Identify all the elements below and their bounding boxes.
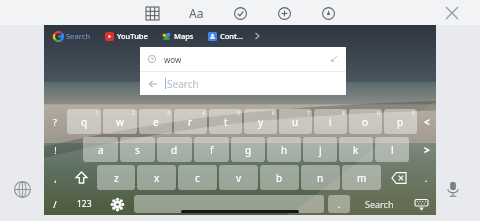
staticText: ! [54,144,57,156]
button[interactable]: f [194,137,229,162]
staticText: g [245,143,252,157]
staticText: q [81,115,88,129]
button[interactable]: Search [54,31,91,41]
button[interactable]: Shift [66,165,96,190]
staticText: r [188,115,193,129]
button[interactable]: c [178,165,217,190]
staticText: 0 [412,110,415,117]
staticText: , [54,172,57,184]
button[interactable]: r [174,109,207,134]
button[interactable]: a [83,137,118,162]
button[interactable]: Settings [102,193,132,215]
staticText: l [391,143,394,157]
staticText: i [329,115,332,129]
button[interactable]: Next [418,137,436,162]
staticText: j [319,143,322,157]
staticText: z [114,171,119,185]
staticText: o [362,115,369,129]
button[interactable]: t [209,109,242,134]
staticText: 3 [167,110,170,117]
button[interactable]: Table [140,1,164,25]
button[interactable]: , [44,165,66,190]
button[interactable]: Done [228,1,252,25]
button[interactable]: h [267,137,301,162]
button[interactable]: w [103,109,137,134]
button[interactable]: wow [140,47,346,71]
button[interactable]: Search [352,193,406,215]
button[interactable]: Draw [316,1,340,25]
button[interactable]: x [137,165,176,190]
button[interactable]: y [244,109,277,134]
staticText: b [276,171,283,185]
button[interactable]: p [384,109,417,134]
staticText: v [236,171,242,185]
staticText: x [154,171,160,185]
button[interactable]: m [342,165,381,190]
button[interactable]: ? [44,109,66,134]
button[interactable]: e [139,109,172,134]
staticText: p [397,115,404,129]
staticText: 4 [202,110,205,117]
button[interactable]: 123 [66,193,102,215]
button[interactable]: i [314,109,347,134]
button[interactable]: u [279,109,312,134]
other: Back [148,79,158,89]
staticText: t [224,115,228,129]
staticText: c [195,171,200,185]
staticText: 8 [342,110,345,117]
staticText: y [258,115,264,129]
staticText: e [153,115,159,129]
staticText: > [424,143,430,157]
button[interactable]: v [219,165,258,190]
staticText: . [338,198,341,210]
staticText: ? [53,116,57,128]
button[interactable]: o [349,109,382,134]
staticText: k [353,143,359,157]
button[interactable]: l [375,137,409,162]
button[interactable]: . [328,195,350,213]
staticText: s [135,143,140,157]
staticText: h [281,143,288,157]
button[interactable]: Space [134,195,324,213]
staticText: 9 [377,110,380,117]
button[interactable]: Back [140,72,346,95]
staticText: < [424,115,430,129]
staticText: wow [164,54,182,65]
button[interactable]: Maps [162,31,194,41]
staticText: a [98,143,104,157]
button[interactable]: Backspace [382,165,416,190]
button[interactable]: q [67,109,101,134]
button[interactable]: Previous [418,109,436,134]
button[interactable]: Aa [184,1,208,25]
staticText: 5 [237,110,240,117]
staticText: 1 [96,110,99,117]
staticText: Search [167,77,199,91]
staticText: u [292,115,299,129]
staticText: / [53,198,57,210]
button[interactable]: b [260,165,299,190]
button[interactable]: ! [44,137,66,162]
staticText: 123 [77,198,92,210]
staticText: 7 [307,110,310,117]
button[interactable]: Add [272,1,296,25]
button[interactable]: Cont... [208,31,244,41]
button[interactable]: k [339,137,373,162]
button[interactable]: g [231,137,265,162]
button[interactable]: j [303,137,337,162]
staticText: Aa [189,5,204,21]
button[interactable]: s [120,137,155,162]
button[interactable]: z [97,165,135,190]
button[interactable]: / [44,193,66,215]
button[interactable]: Hide keyboard [406,193,436,215]
button[interactable]: Voice input [439,175,467,203]
button[interactable]: YouTube [105,31,148,41]
button[interactable]: Language [8,175,36,203]
button[interactable]: n [301,165,340,190]
staticText: 2 [132,110,135,117]
staticText: f [210,143,214,157]
staticText: d [171,143,178,157]
staticText: . [425,172,428,184]
button[interactable]: Close [440,1,464,25]
staticText: YouTube [117,31,148,41]
button[interactable]: d [157,137,192,162]
